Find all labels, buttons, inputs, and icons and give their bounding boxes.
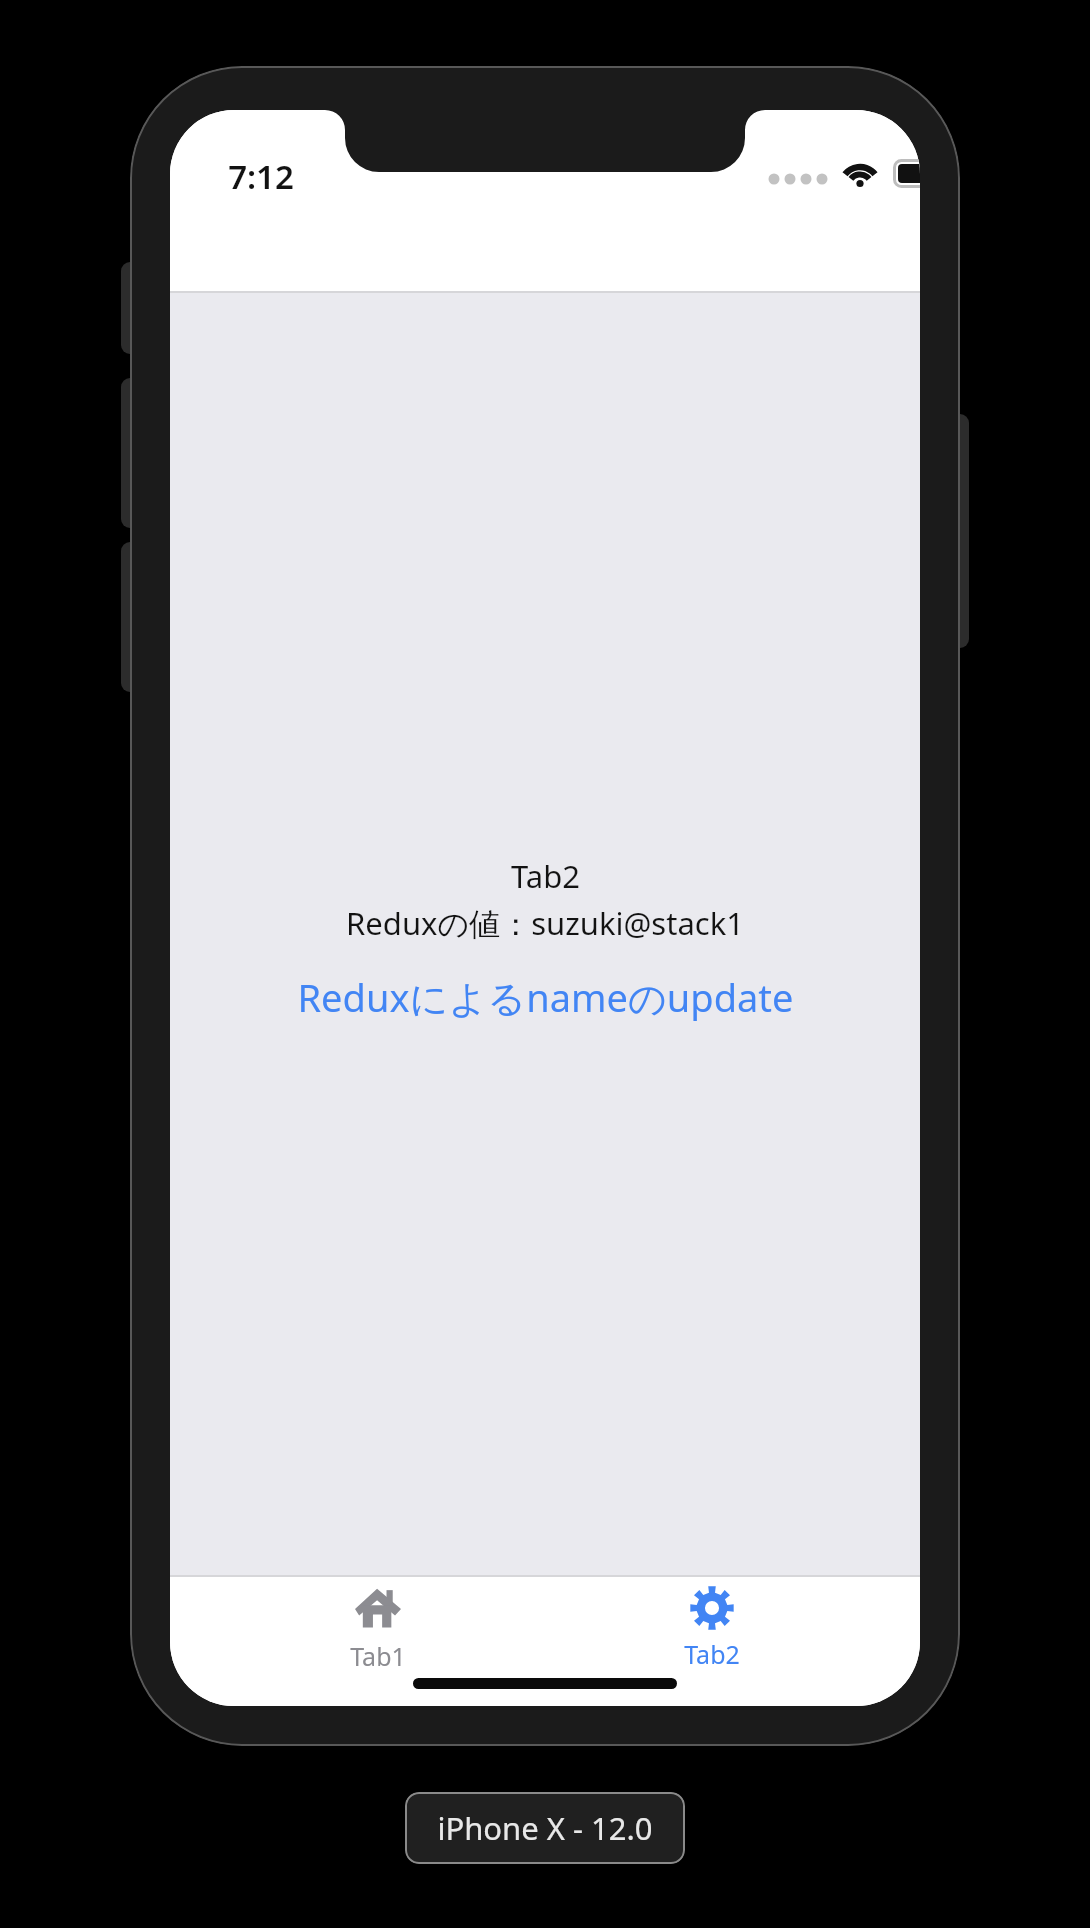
button[interactable]: Tab2 xyxy=(587,1577,837,1671)
staticText: Reduxの値：suzuki@stack1 xyxy=(346,902,744,944)
staticText: Tab2 xyxy=(511,855,580,897)
button[interactable]: Tab1 xyxy=(253,1577,503,1673)
staticText: iPhone X - 12.0 xyxy=(437,1807,653,1849)
staticText: Tab1 xyxy=(350,1639,406,1673)
staticText: 7:12 xyxy=(228,154,294,199)
staticText: Reduxによるnameのupdate xyxy=(297,971,794,1023)
button[interactable]: iPhone X - 12.0 xyxy=(405,1792,685,1864)
button[interactable]: Reduxによるnameのupdate xyxy=(283,964,808,1030)
staticText: Tab2 xyxy=(684,1637,740,1671)
